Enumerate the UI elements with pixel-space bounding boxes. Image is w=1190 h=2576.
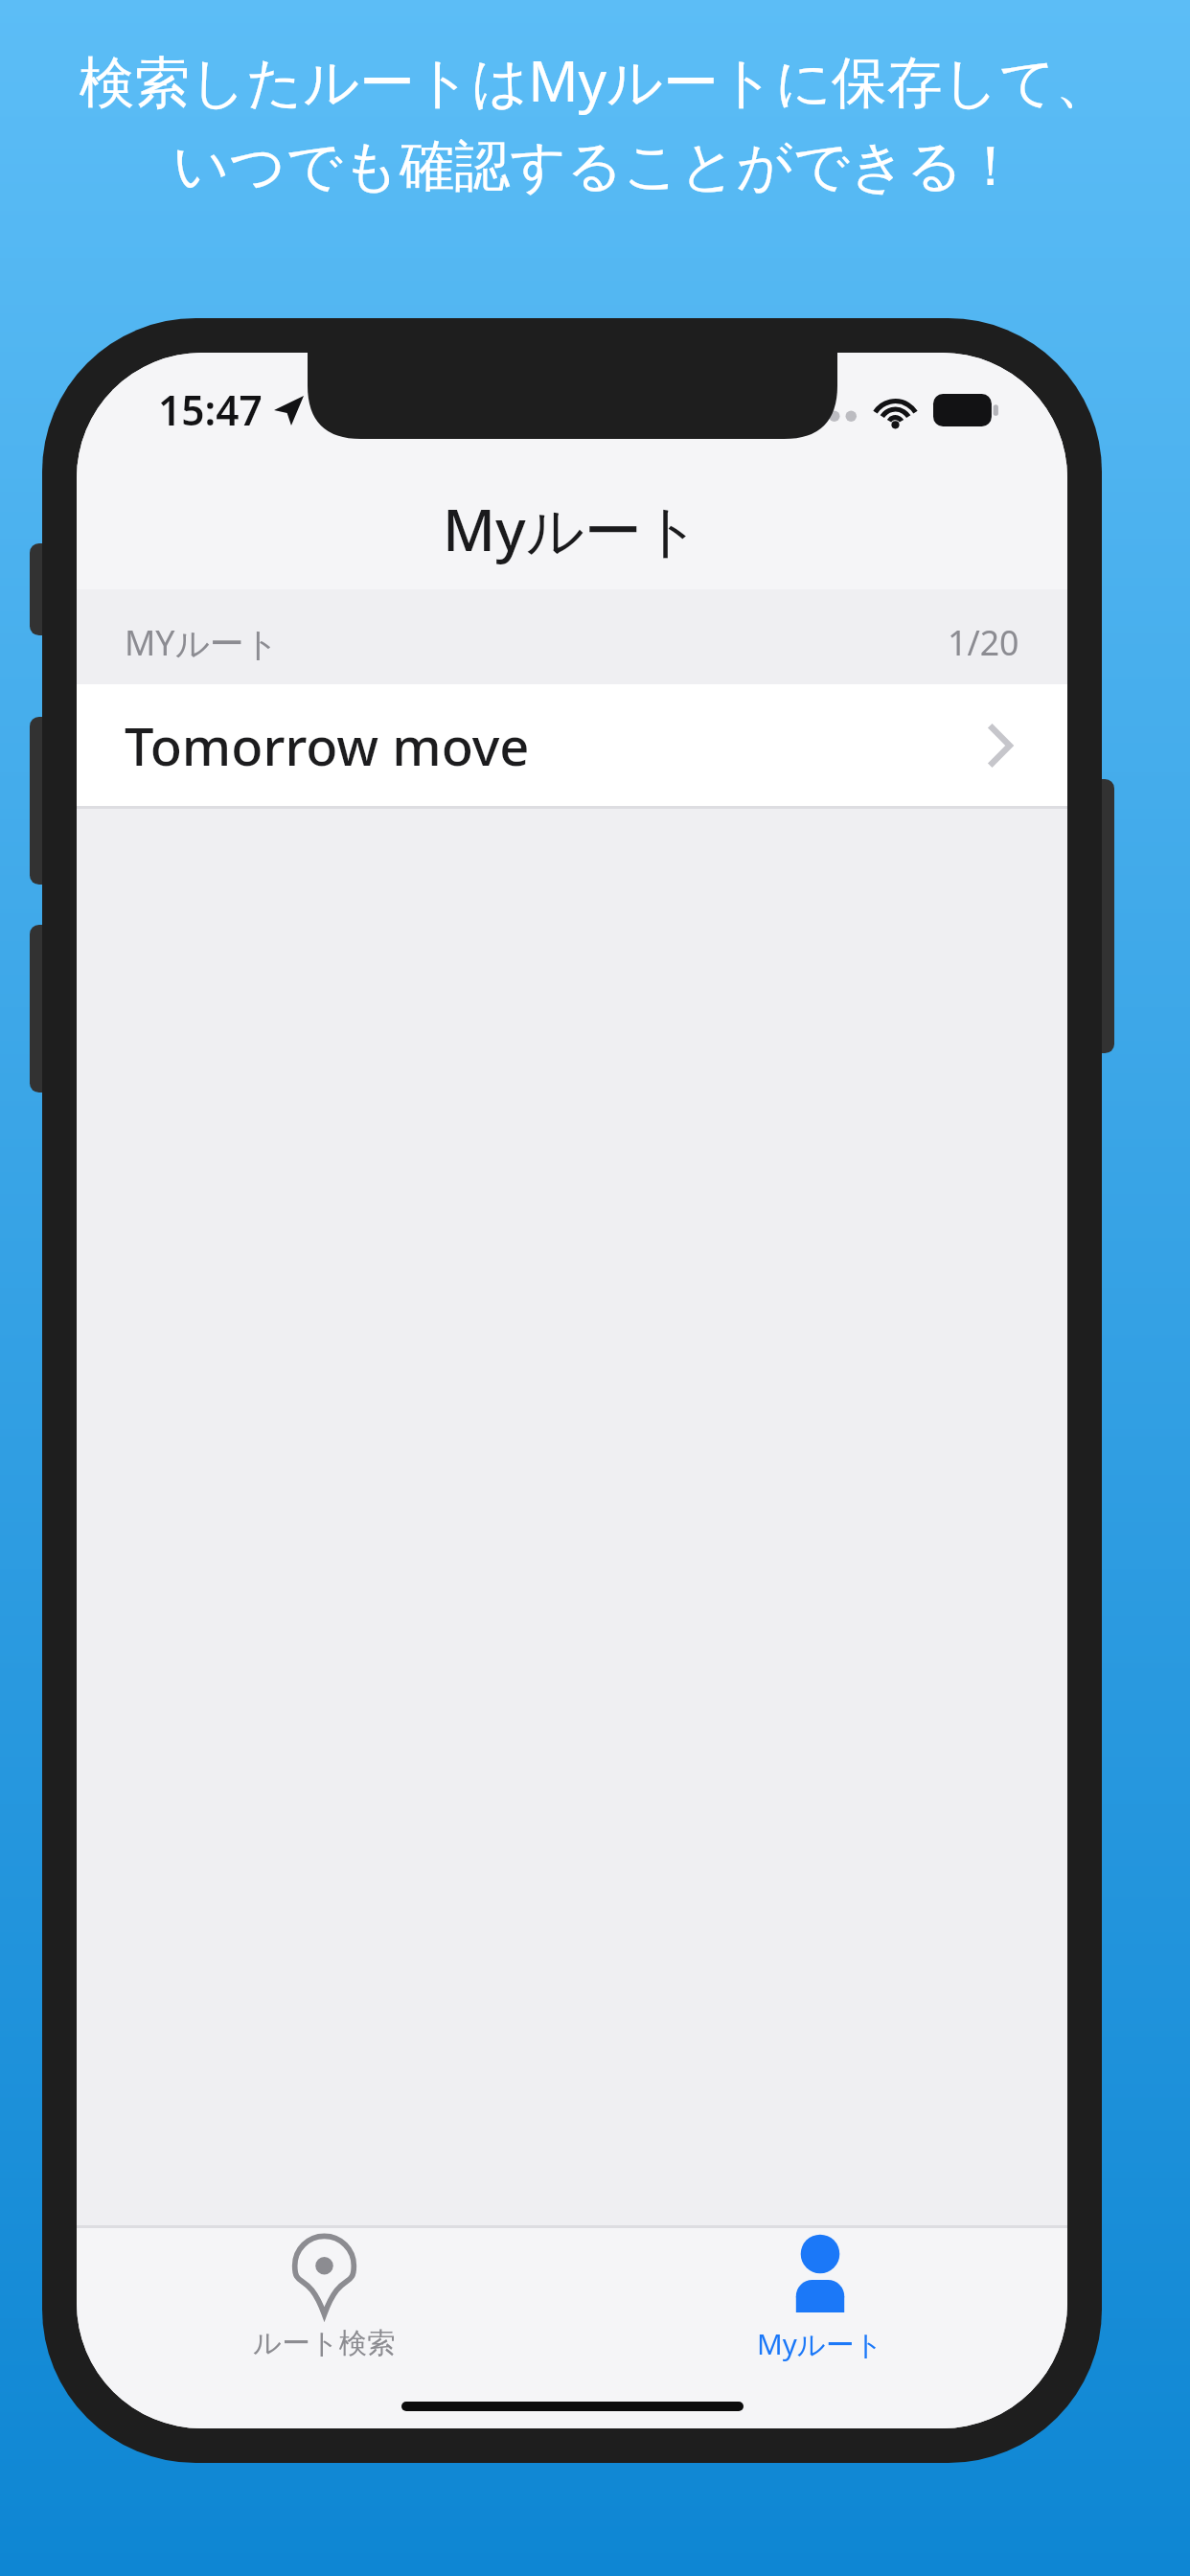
staticText: Myルート (757, 2324, 883, 2362)
button[interactable]: Tomorrow move (77, 684, 1067, 806)
staticText: 1/20 (948, 619, 1019, 666)
staticText: Myルート (443, 490, 701, 568)
button[interactable]: ルート検索 (77, 2228, 572, 2366)
staticText: MYルート (125, 619, 280, 666)
staticText: Tomorrow move (125, 710, 530, 781)
staticText: ルート検索 (253, 2326, 396, 2361)
staticText: いつでも確認することができる！ (172, 131, 1018, 201)
button[interactable]: Myルート (572, 2228, 1067, 2366)
staticText: 検索したルートはMyルートに保存して、 (79, 42, 1111, 118)
staticText: 15:47 (158, 382, 263, 438)
